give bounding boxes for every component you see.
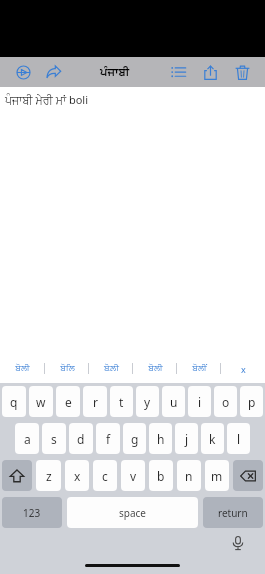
staticText: r — [93, 394, 98, 410]
button[interactable]: p — [240, 386, 263, 417]
button[interactable]: m — [205, 460, 229, 491]
staticText: q — [10, 394, 18, 410]
button[interactable]: ਬੋਲੀ — [133, 354, 177, 383]
button[interactable]: x — [65, 460, 89, 491]
staticText: p — [248, 394, 256, 410]
button[interactable]: Dictate — [227, 532, 249, 554]
staticText: c — [102, 468, 108, 484]
button[interactable]: Backspace — [233, 460, 263, 491]
staticText: j — [185, 431, 189, 447]
button[interactable]: u — [162, 386, 185, 417]
button[interactable]: ਬੋਲਿ — [45, 354, 89, 383]
button[interactable]: g — [123, 423, 146, 454]
button[interactable]: return — [203, 497, 263, 528]
staticText: e — [65, 394, 72, 410]
staticText: return — [218, 506, 248, 520]
button[interactable]: t — [110, 386, 133, 417]
button[interactable]: Share forward — [42, 61, 64, 83]
button[interactable]: z — [36, 460, 61, 491]
button[interactable]: f — [96, 423, 120, 454]
button[interactable]: d — [69, 423, 93, 454]
button[interactable]: Share — [199, 61, 221, 83]
staticText: i — [198, 394, 202, 410]
staticText: y — [144, 394, 151, 410]
staticText: ਪੰਜਾਬੀ ਮੇਰੀ ਮਾਂ boli — [5, 92, 88, 107]
staticText: u — [170, 394, 178, 410]
button[interactable]: v — [121, 460, 145, 491]
staticText: h — [157, 431, 165, 447]
button[interactable]: s — [42, 423, 66, 454]
button[interactable]: y — [136, 386, 159, 417]
button[interactable]: Play — [12, 61, 34, 83]
button[interactable]: ਬੋਲ਼ੀ — [89, 354, 133, 383]
staticText: ਬੋਲੀਂ — [192, 364, 207, 373]
button[interactable]: i — [188, 386, 211, 417]
button[interactable]: b — [149, 460, 173, 491]
button[interactable]: h — [149, 423, 172, 454]
button[interactable]: o — [214, 386, 237, 417]
staticText: l — [237, 431, 241, 447]
staticText: t — [119, 394, 124, 410]
staticText: z — [46, 468, 52, 484]
button[interactable]: Delete — [231, 61, 253, 83]
staticText: m — [211, 468, 223, 484]
staticText: v — [130, 468, 137, 484]
staticText: ਬੋਲੀ — [148, 364, 163, 373]
button[interactable]: space — [67, 497, 198, 528]
button[interactable]: l — [227, 423, 250, 454]
button[interactable]: Shift — [2, 460, 32, 491]
button[interactable]: e — [56, 386, 80, 417]
button[interactable]: c — [93, 460, 117, 491]
staticText: ਬੋਲੀ — [15, 364, 30, 373]
staticText: space — [119, 506, 146, 520]
staticText: a — [24, 431, 31, 447]
staticText: 123 — [23, 506, 41, 520]
button[interactable]: ਬੋਲੀ — [0, 354, 45, 383]
button[interactable]: x — [221, 354, 265, 383]
button[interactable]: k — [201, 423, 224, 454]
button[interactable]: 123 — [2, 497, 62, 528]
staticText: n — [185, 468, 193, 484]
staticText: x — [241, 363, 246, 375]
button[interactable]: List — [167, 61, 189, 83]
staticText: f — [106, 431, 111, 447]
staticText: g — [131, 431, 139, 447]
staticText: w — [36, 394, 46, 410]
staticText: ਪੰਜਾਬੀ — [100, 67, 130, 78]
staticText: ਬੋਲਿ — [60, 364, 75, 373]
button[interactable]: a — [15, 423, 39, 454]
staticText: k — [209, 431, 216, 447]
staticText: b — [157, 468, 165, 484]
button[interactable]: w — [29, 386, 53, 417]
staticText: o — [222, 394, 230, 410]
button[interactable]: ਬੋਲੀਂ — [177, 354, 221, 383]
button[interactable]: n — [177, 460, 201, 491]
button[interactable]: q — [2, 386, 26, 417]
staticText: s — [51, 431, 57, 447]
staticText: ਬੋਲ਼ੀ — [104, 364, 119, 373]
staticText: d — [77, 431, 85, 447]
staticText: x — [74, 468, 81, 484]
button[interactable]: j — [175, 423, 198, 454]
button[interactable]: r — [83, 386, 107, 417]
